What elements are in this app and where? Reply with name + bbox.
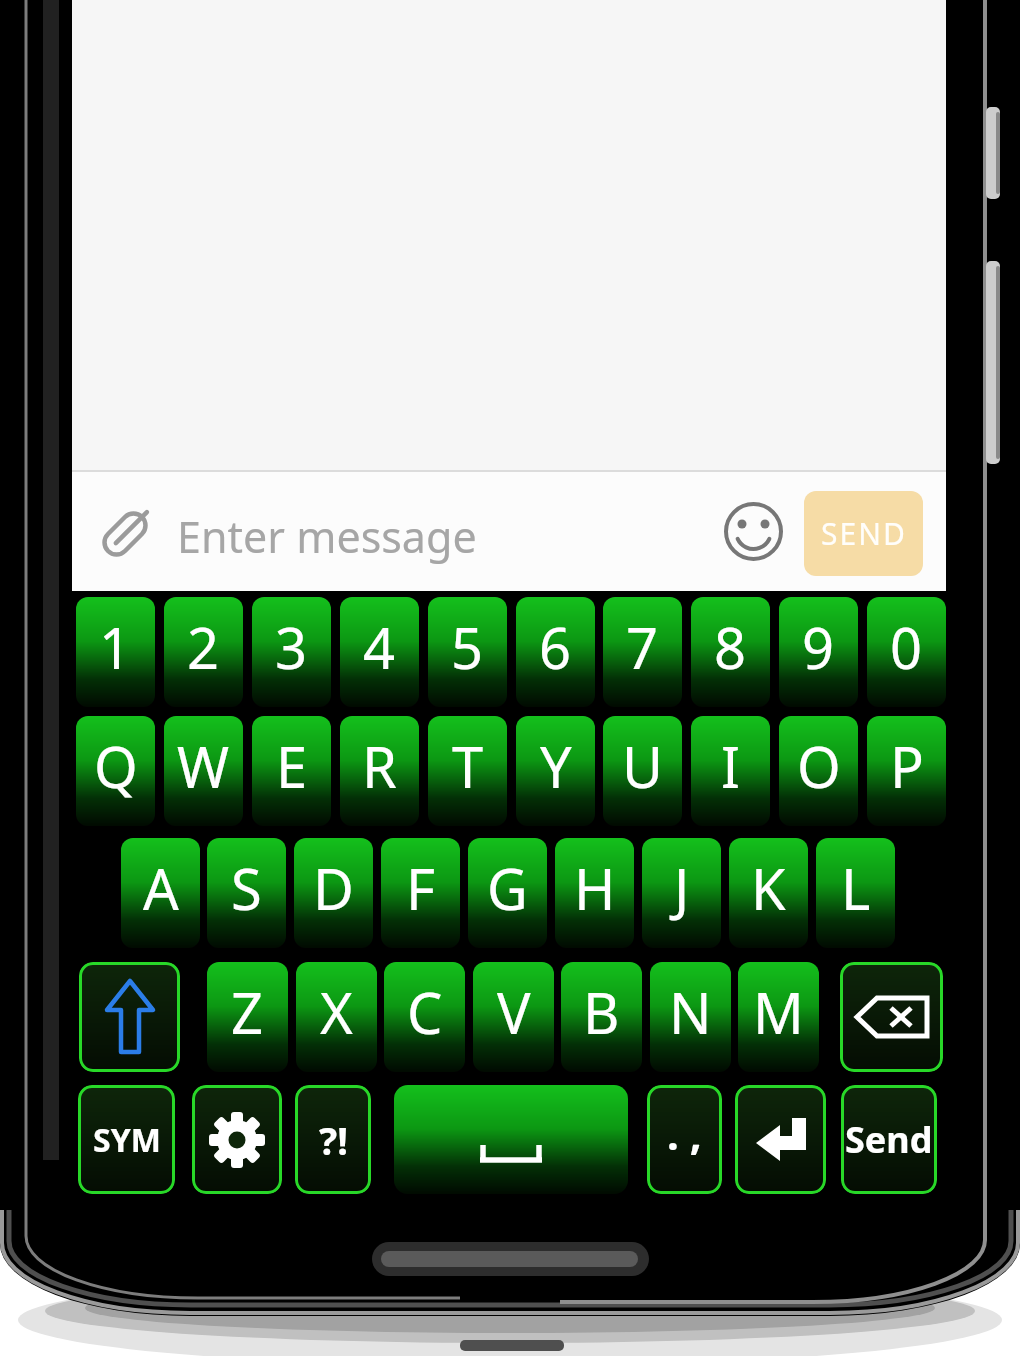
- staticText: Z: [231, 974, 264, 1050]
- button[interactable]: 2: [164, 597, 243, 707]
- staticText: O: [797, 728, 841, 804]
- staticText: P: [890, 728, 924, 804]
- button[interactable]: J: [642, 838, 721, 948]
- button[interactable]: 0: [867, 597, 946, 707]
- button[interactable]: N: [650, 962, 731, 1072]
- staticText: N: [669, 974, 712, 1050]
- button[interactable]: [72, 472, 946, 591]
- staticText: X: [320, 974, 353, 1050]
- staticText: C: [407, 974, 443, 1050]
- button[interactable]: ?!: [295, 1085, 371, 1194]
- button[interactable]: R: [340, 716, 419, 826]
- button[interactable]: W: [164, 716, 243, 826]
- staticText: Enter message: [177, 507, 477, 566]
- staticText: 0: [890, 609, 923, 685]
- staticText: SYM: [93, 1118, 161, 1162]
- button[interactable]: [192, 1085, 282, 1194]
- staticText: U: [622, 728, 663, 804]
- staticText: Send: [845, 1115, 933, 1164]
- button[interactable]: V: [473, 962, 554, 1072]
- button[interactable]: S: [207, 838, 286, 948]
- button[interactable]: B: [561, 962, 642, 1072]
- button[interactable]: SYM: [78, 1085, 175, 1194]
- button[interactable]: I: [691, 716, 770, 826]
- button[interactable]: . ,: [647, 1085, 722, 1194]
- staticText: L: [841, 850, 871, 926]
- staticText: 7: [626, 609, 659, 685]
- button[interactable]: Send: [841, 1085, 937, 1194]
- button[interactable]: F: [381, 838, 460, 948]
- button[interactable]: D: [294, 838, 373, 948]
- staticText: S: [231, 850, 262, 926]
- button[interactable]: [735, 1085, 826, 1194]
- staticText: Y: [540, 728, 572, 804]
- button[interactable]: Z: [207, 962, 288, 1072]
- button[interactable]: P: [867, 716, 946, 826]
- button[interactable]: 5: [428, 597, 507, 707]
- button[interactable]: O: [779, 716, 858, 826]
- staticText: F: [406, 850, 436, 926]
- staticText: H: [574, 850, 616, 926]
- staticText: 8: [714, 609, 747, 685]
- button[interactable]: C: [384, 962, 465, 1072]
- button[interactable]: [840, 962, 943, 1072]
- staticText: 2: [187, 609, 220, 685]
- staticText: V: [497, 974, 531, 1050]
- staticText: I: [721, 728, 740, 804]
- staticText: SEND: [821, 513, 907, 554]
- staticText: 9: [802, 609, 835, 685]
- button[interactable]: M: [738, 962, 819, 1072]
- button[interactable]: [79, 962, 180, 1072]
- button[interactable]: [100, 509, 150, 559]
- button[interactable]: 6: [516, 597, 595, 707]
- staticText: D: [313, 850, 354, 926]
- staticText: 5: [451, 609, 484, 685]
- staticText: 3: [275, 609, 308, 685]
- staticText: M: [753, 974, 804, 1050]
- staticText: 1: [99, 609, 132, 685]
- button[interactable]: 1: [76, 597, 155, 707]
- staticText: E: [276, 728, 308, 804]
- button[interactable]: U: [603, 716, 682, 826]
- staticText: 4: [363, 609, 396, 685]
- button[interactable]: 9: [779, 597, 858, 707]
- button[interactable]: L: [816, 838, 895, 948]
- button[interactable]: H: [555, 838, 634, 948]
- button[interactable]: SEND: [804, 491, 923, 576]
- staticText: J: [674, 850, 690, 926]
- button[interactable]: X: [296, 962, 377, 1072]
- button[interactable]: E: [252, 716, 331, 826]
- button[interactable]: [394, 1085, 628, 1194]
- staticText: B: [583, 974, 620, 1050]
- button[interactable]: G: [468, 838, 547, 948]
- button[interactable]: K: [729, 838, 808, 948]
- button[interactable]: 4: [340, 597, 419, 707]
- staticText: ?!: [319, 1114, 348, 1166]
- button[interactable]: Q: [76, 716, 155, 826]
- staticText: R: [362, 728, 397, 804]
- staticText: G: [487, 850, 528, 926]
- button[interactable]: 7: [603, 597, 682, 707]
- button[interactable]: Y: [516, 716, 595, 826]
- staticText: 6: [539, 609, 572, 685]
- staticText: Q: [94, 728, 138, 804]
- button[interactable]: A: [121, 838, 200, 948]
- button[interactable]: [724, 502, 783, 561]
- button[interactable]: T: [428, 716, 507, 826]
- staticText: T: [452, 728, 484, 804]
- staticText: . ,: [667, 1105, 702, 1162]
- button[interactable]: 8: [691, 597, 770, 707]
- staticText: A: [143, 850, 179, 926]
- staticText: K: [751, 850, 786, 926]
- button[interactable]: 3: [252, 597, 331, 707]
- staticText: W: [177, 728, 230, 804]
